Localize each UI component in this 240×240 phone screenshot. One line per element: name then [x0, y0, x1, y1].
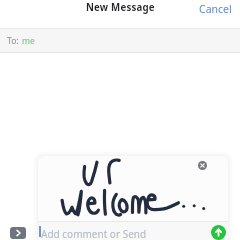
staticText: Cancel	[199, 2, 232, 13]
staticText: me	[22, 35, 35, 47]
button[interactable]: Cancel	[191, 0, 240, 15]
button[interactable]: Remove drawing	[198, 161, 207, 170]
staticText: To:	[7, 35, 19, 47]
staticText: New Message	[86, 1, 155, 14]
button[interactable]: Show keyboard	[10, 227, 26, 239]
staticText: Add comment or Send	[41, 227, 147, 240]
button[interactable]: To:	[0, 29, 240, 52]
button[interactable]: Send	[211, 225, 226, 240]
